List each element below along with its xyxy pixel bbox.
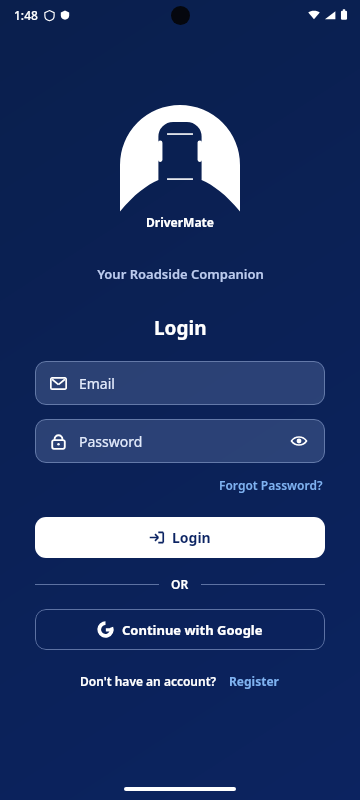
- staticText: OR: [171, 576, 189, 592]
- staticText: Forgot Password?: [219, 477, 323, 493]
- staticText: Password: [79, 432, 288, 451]
- button[interactable]: Login: [35, 517, 325, 558]
- staticText: Your Roadside Companion: [97, 265, 264, 283]
- staticText: Continue with Google: [122, 621, 263, 639]
- button[interactable]: Continue with Google: [35, 609, 325, 650]
- staticText: Don't have an account?: [80, 673, 217, 689]
- staticText: Register: [229, 673, 279, 689]
- staticText: 1:48: [14, 7, 38, 23]
- staticText: Login: [172, 528, 211, 547]
- staticText: DriverMate: [146, 214, 214, 230]
- button[interactable]: Show password: [288, 430, 310, 452]
- staticText: Login: [154, 315, 207, 341]
- button[interactable]: Password: [35, 419, 325, 463]
- button[interactable]: Forgot Password?: [217, 475, 325, 495]
- button[interactable]: Register: [227, 671, 281, 691]
- staticText: Email: [79, 374, 310, 393]
- button[interactable]: Email: [35, 361, 325, 405]
